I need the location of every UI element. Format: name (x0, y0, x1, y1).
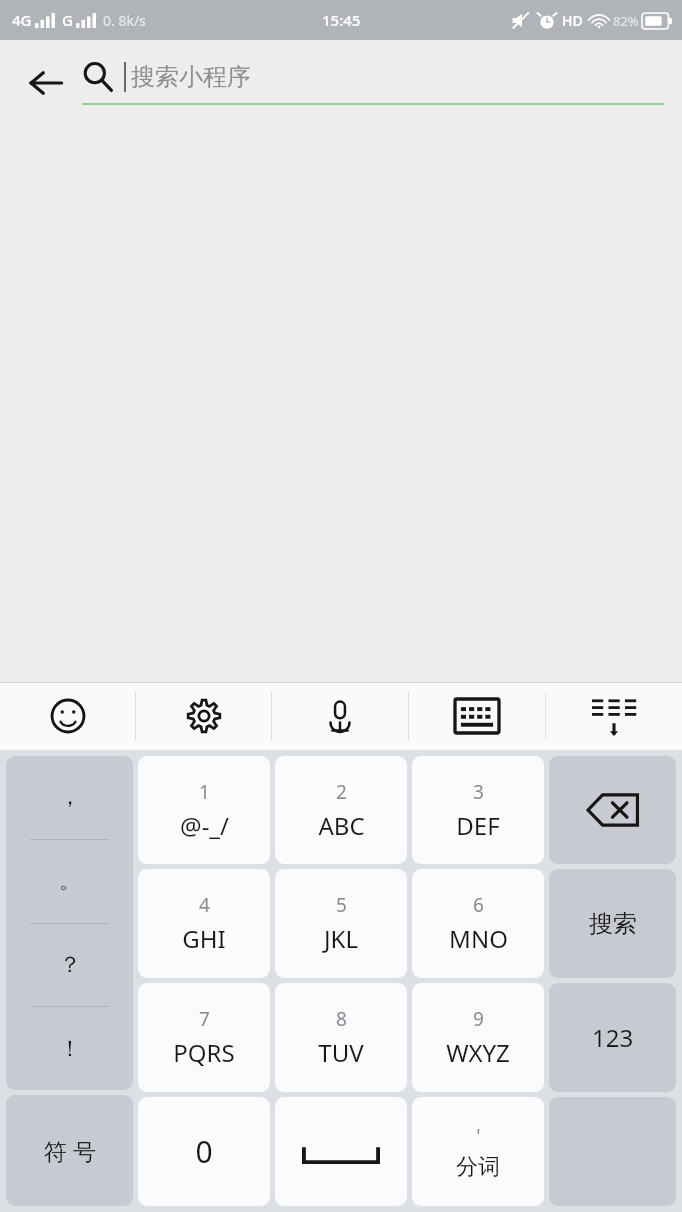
button[interactable]: Hide keyboard (546, 682, 682, 750)
staticText: 123 (592, 1021, 634, 1054)
staticText: 1 (199, 779, 210, 805)
button[interactable]: 9 (412, 983, 544, 1092)
staticText: HD (562, 11, 583, 30)
button[interactable]: Voice input (272, 682, 408, 750)
staticText: 搜索 (589, 909, 637, 939)
staticText: 8 (336, 1006, 347, 1032)
button[interactable]: 8 (275, 983, 407, 1092)
staticText: 6 (473, 892, 484, 918)
button[interactable]: Space (275, 1097, 407, 1206)
staticText: 搜索小程序 (131, 62, 251, 92)
staticText: ' (476, 1123, 481, 1149)
staticText: 3 (473, 779, 484, 805)
staticText: @-_/ (180, 809, 229, 842)
staticText: 15:45 (322, 10, 361, 30)
button[interactable]: 4 (138, 869, 270, 978)
button[interactable]: 7 (138, 983, 270, 1092)
staticText: ， (59, 783, 81, 811)
button[interactable]: 2 (275, 756, 407, 864)
staticText: ABC (318, 809, 365, 842)
button[interactable]: 123 (549, 983, 676, 1092)
button[interactable]: 3 (412, 756, 544, 864)
staticText: ？ (59, 951, 81, 979)
button[interactable]: 符 号 (6, 1095, 133, 1206)
staticText: 7 (199, 1006, 210, 1032)
button[interactable]: Switch keyboard (409, 682, 545, 750)
staticText: 82% (613, 12, 639, 30)
staticText: ！ (59, 1035, 81, 1063)
staticText: PQRS (173, 1036, 235, 1069)
staticText: 2 (336, 779, 347, 805)
staticText: 0 (195, 1131, 213, 1172)
staticText: TUV (318, 1036, 364, 1069)
button[interactable]: 1 (138, 756, 270, 864)
button[interactable]: Back (10, 47, 82, 119)
button[interactable]: 搜索 (549, 869, 676, 978)
staticText: 4G (12, 10, 32, 30)
staticText: WXYZ (446, 1036, 510, 1069)
staticText: 。 (59, 867, 81, 895)
button[interactable]: 搜索小程序 (82, 61, 664, 105)
staticText: 0. 8k/s (103, 11, 146, 30)
staticText: 分词 (456, 1153, 500, 1181)
button[interactable]: Emoji (0, 682, 135, 750)
staticText: MNO (449, 922, 508, 955)
staticText: JKL (324, 922, 358, 955)
button[interactable]: 0 (138, 1097, 270, 1206)
staticText: 9 (473, 1006, 484, 1032)
button[interactable]: 5 (275, 869, 407, 978)
staticText: DEF (456, 809, 500, 842)
staticText: 符 号 (44, 1135, 96, 1166)
button[interactable]: ' (412, 1097, 544, 1206)
staticText: 5 (336, 892, 347, 918)
button[interactable]: Punctuation (6, 756, 133, 1090)
staticText: GHI (182, 922, 226, 955)
staticText: 4 (199, 892, 210, 918)
button[interactable]: Backspace (549, 756, 676, 864)
button[interactable]: 6 (412, 869, 544, 978)
staticText: G (62, 10, 73, 30)
button[interactable]: Settings (136, 682, 271, 750)
